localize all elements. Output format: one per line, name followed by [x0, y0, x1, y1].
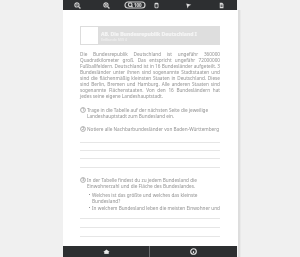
button[interactable]: Zoom level 100% [124, 0, 146, 10]
staticText: 2 [82, 126, 85, 132]
button[interactable]: Page view [149, 0, 163, 10]
staticText: Notiere alle Nachbarbundesländer von Bad… [87, 126, 220, 132]
button[interactable]: Home [63, 246, 149, 257]
staticText: 3 [82, 177, 85, 183]
staticText: Erdkunde M/S 4 [101, 37, 128, 42]
button[interactable]: Info [150, 246, 237, 257]
staticText: Die Bundesrepublik Deutschland ist ungef… [80, 51, 220, 99]
staticText: Welches ist das größte und welches das k… [92, 192, 198, 204]
staticText: 1 [82, 107, 85, 113]
button[interactable]: Export page [214, 0, 228, 10]
staticText: AB. Die Bundesrepublik Deutschland I [101, 31, 197, 38]
staticText: In welchem Bundesland leben die meisten … [92, 205, 220, 211]
staticText: In der Tabelle findest du zu jedem Bunde… [87, 177, 197, 189]
staticText: 100 [134, 2, 142, 8]
staticText: Trage in die Tabelle auf der nächsten Se… [87, 107, 209, 119]
button[interactable]: Zoom out [70, 0, 84, 10]
button[interactable]: Select tool [181, 0, 195, 10]
button[interactable]: Zoom in [99, 0, 113, 10]
